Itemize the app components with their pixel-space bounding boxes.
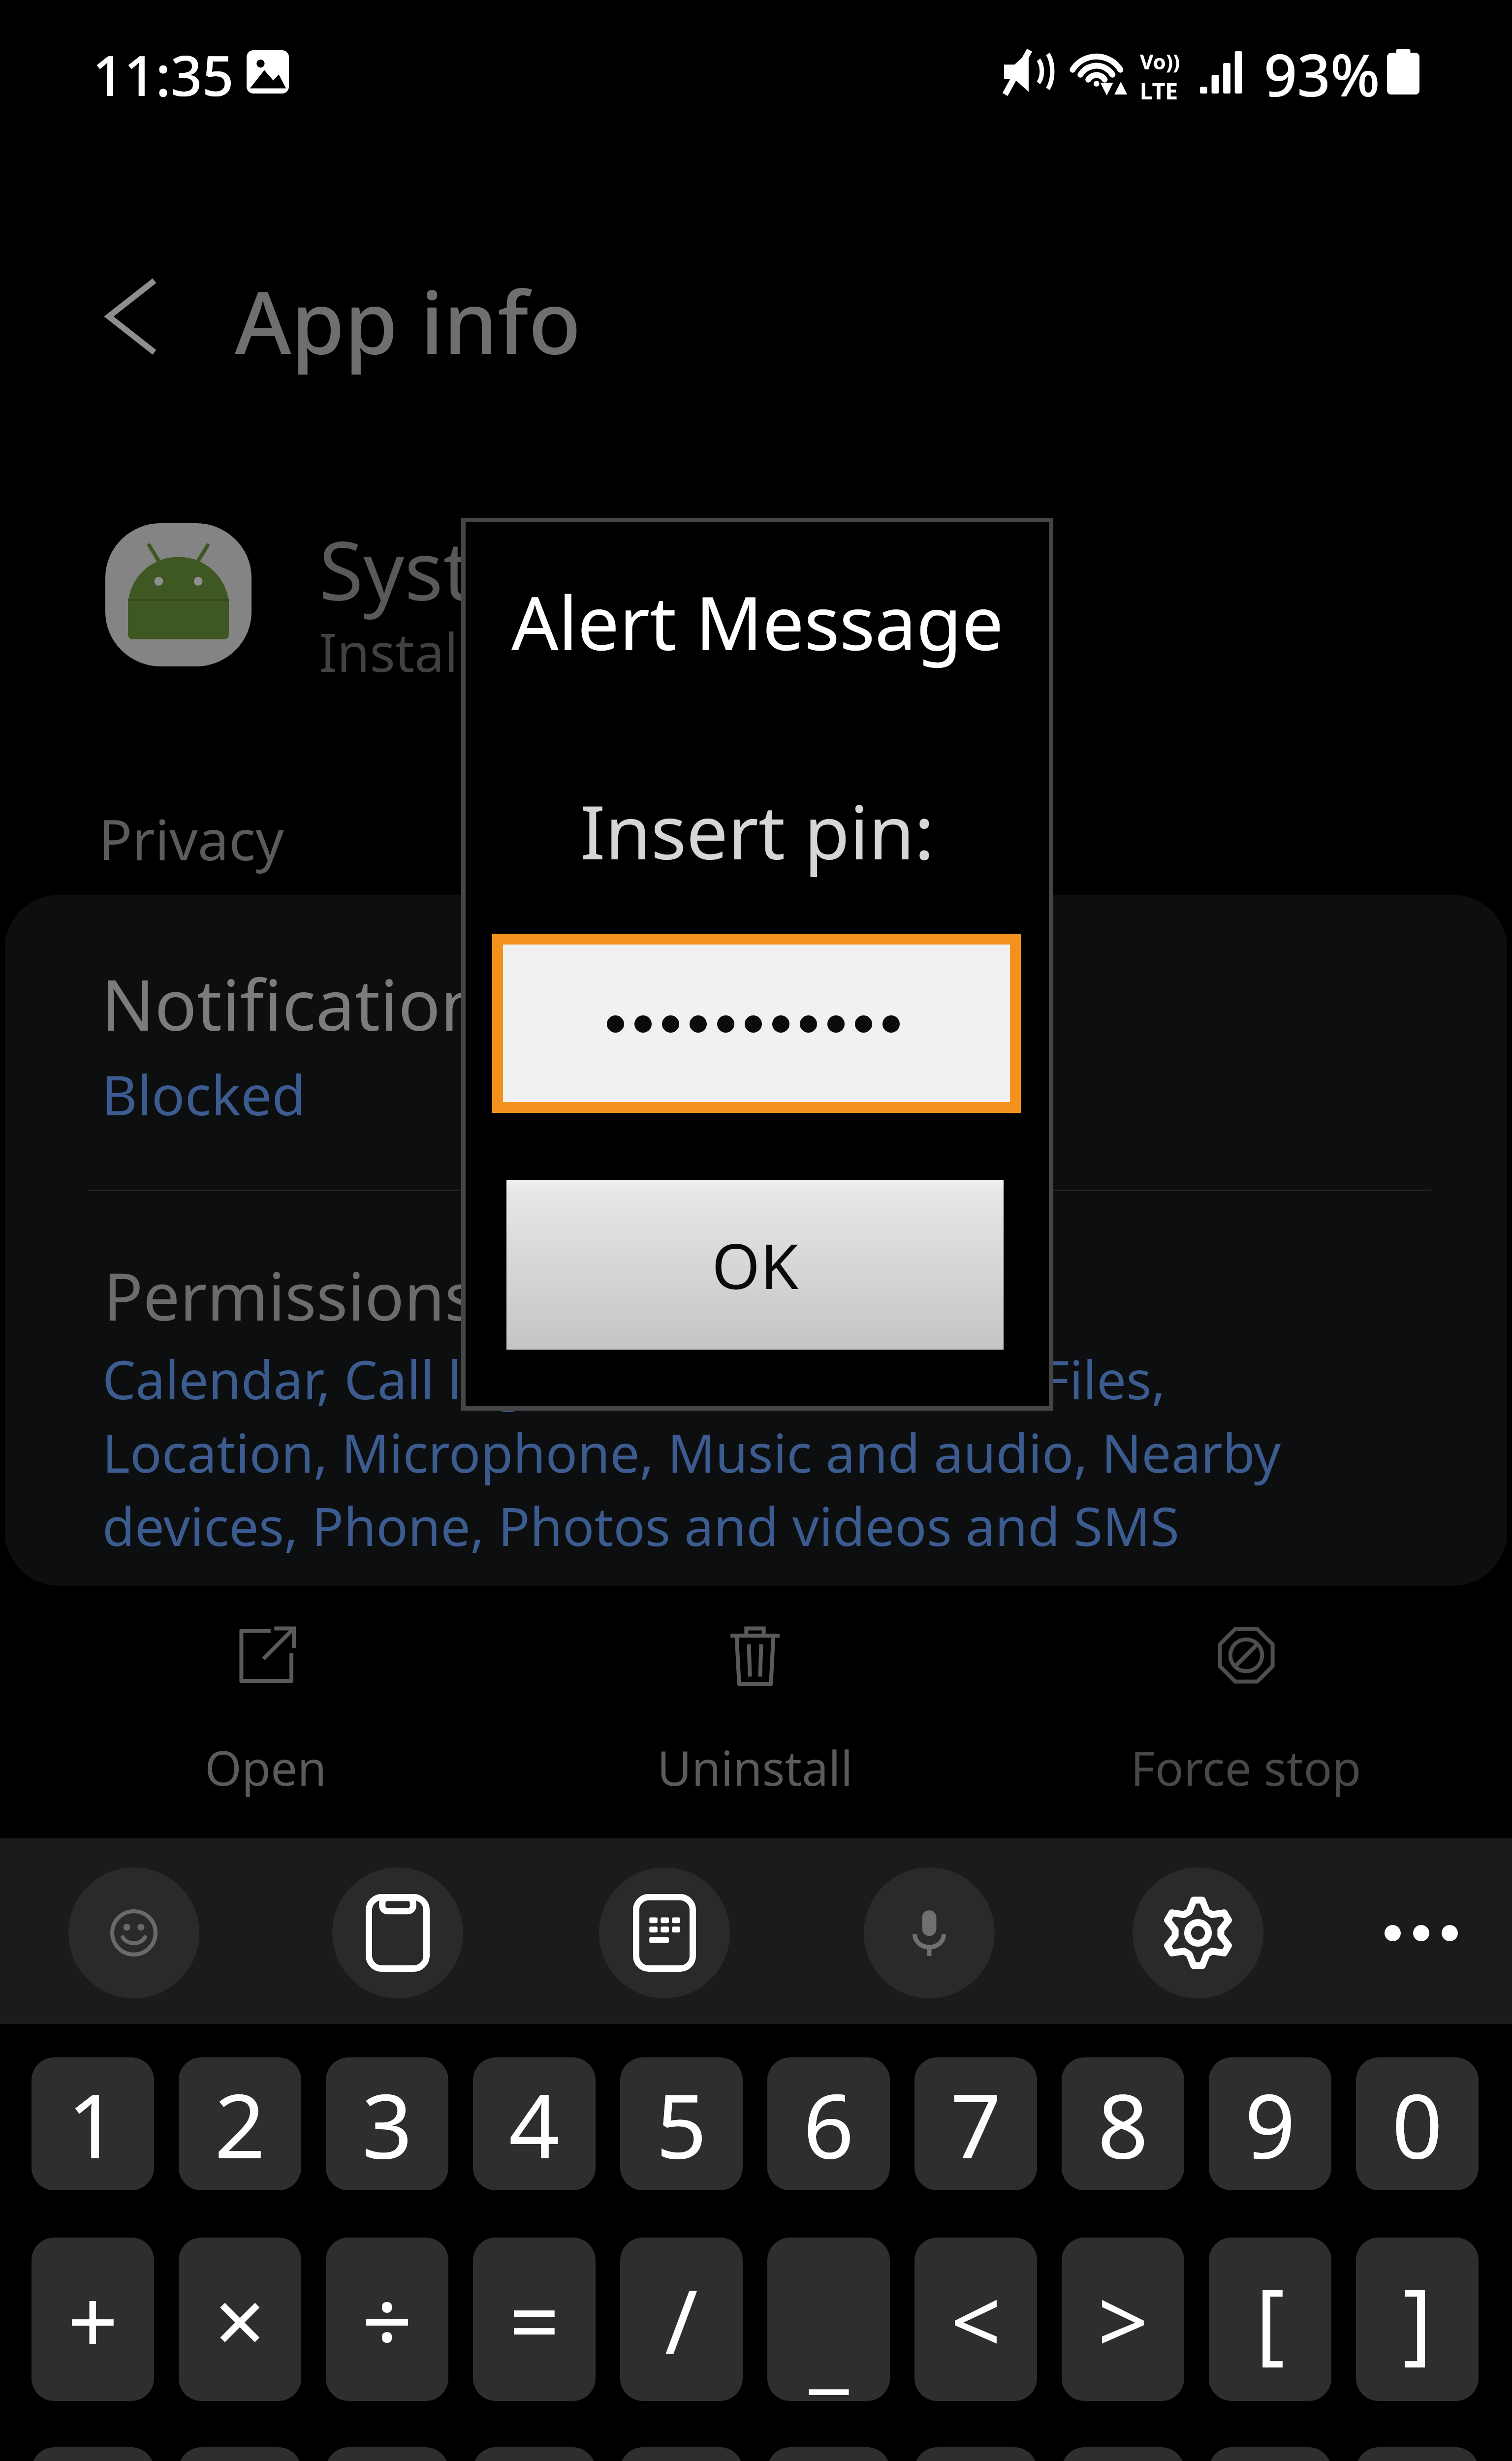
staticText: Permissions	[103, 1251, 476, 1340]
staticText: ÷	[362, 2259, 412, 2380]
staticText: >	[1098, 2259, 1148, 2380]
button[interactable]: key (	[1209, 2447, 1331, 2461]
button[interactable]: Voice input	[864, 1867, 995, 1998]
button[interactable]: key _	[767, 2238, 890, 2401]
button[interactable]: key >	[1062, 2238, 1184, 2401]
staticText: 4	[509, 2064, 560, 2184]
button[interactable]: key +	[31, 2238, 154, 2401]
staticText: [	[1256, 2259, 1285, 2380]
staticText: Open	[205, 1735, 327, 1799]
button[interactable]: key ]	[1356, 2238, 1479, 2401]
button[interactable]: key 8	[1062, 2057, 1184, 2190]
button[interactable]: key 9	[1209, 2057, 1331, 2190]
button[interactable]: key 2	[179, 2057, 301, 2190]
staticText: <	[950, 2259, 1001, 2380]
button[interactable]: key @	[179, 2447, 301, 2461]
staticText: ×	[215, 2259, 265, 2380]
button[interactable]: key [	[1209, 2238, 1331, 2401]
button[interactable]: key )	[1356, 2447, 1479, 2461]
staticText: 6	[803, 2064, 854, 2184]
staticText: Vo))	[1140, 47, 1180, 75]
staticText: Insert pin:	[580, 781, 934, 881]
staticText: Blocked	[101, 1056, 306, 1132]
button[interactable]: key &	[914, 2447, 1037, 2461]
staticText: 1	[67, 2064, 118, 2184]
button[interactable]: key #	[326, 2447, 448, 2461]
staticText: Privacy	[98, 801, 284, 877]
staticText: =	[509, 2259, 560, 2380]
staticText: App info	[235, 262, 581, 379]
staticText: Calendar, Call logs, Camera, Contacts, F…	[102, 1343, 1281, 1561]
button[interactable]: More options	[1352, 1864, 1490, 2002]
button[interactable]: key !	[31, 2447, 154, 2461]
staticText: 8	[1098, 2064, 1148, 2184]
staticText: OK	[712, 1223, 799, 1307]
button[interactable]: key 1	[31, 2057, 154, 2190]
button[interactable]: key ÷	[326, 2238, 448, 2401]
staticText: 93%	[1264, 34, 1380, 114]
button[interactable]: key 6	[767, 2057, 890, 2190]
staticText: 3	[362, 2064, 412, 2184]
staticText: 5	[656, 2064, 707, 2184]
button[interactable]: Open	[128, 1609, 404, 1806]
button[interactable]: key /	[620, 2238, 743, 2401]
button[interactable]: Uninstall	[617, 1609, 893, 1806]
button[interactable]: Back	[74, 252, 187, 380]
button[interactable]	[503, 945, 1010, 1102]
button[interactable]: OK	[506, 1180, 1004, 1350]
staticText: +	[67, 2259, 118, 2380]
staticText: Notifications	[101, 956, 517, 1051]
staticText: 2	[215, 2064, 265, 2184]
button[interactable]: Force stop	[1108, 1609, 1384, 1806]
button[interactable]: key <	[914, 2238, 1037, 2401]
button[interactable]: key 5	[620, 2057, 743, 2190]
staticText: 11:35	[93, 37, 234, 112]
button[interactable]: key 4	[473, 2057, 596, 2190]
staticText: ]	[1403, 2259, 1432, 2380]
staticText: /	[665, 2259, 698, 2380]
button[interactable]: key %	[620, 2447, 743, 2461]
staticText: Alert Message	[511, 571, 1004, 672]
staticText: Installed	[319, 615, 535, 688]
staticText: Uninstall	[657, 1735, 853, 1799]
button[interactable]: Permissions	[5, 1191, 1507, 1585]
staticText: 0	[1392, 2064, 1443, 2184]
button[interactable]: key 7	[914, 2057, 1037, 2190]
button[interactable]: key 3	[326, 2057, 448, 2190]
staticText: 7	[950, 2064, 1001, 2184]
button[interactable]: Notifications	[5, 895, 1507, 1190]
button[interactable]: key ₹	[473, 2447, 596, 2461]
button[interactable]: key =	[473, 2238, 596, 2401]
button[interactable]: key 0	[1356, 2057, 1479, 2190]
button[interactable]: key *	[1062, 2447, 1184, 2461]
button[interactable]: Keyboard settings	[1133, 1867, 1263, 1998]
button[interactable]: Clipboard	[332, 1867, 463, 1998]
staticText: System Settings	[319, 514, 921, 624]
staticText: _	[809, 2287, 849, 2401]
button[interactable]: Keyboard modes	[599, 1867, 730, 1998]
button[interactable]: Emoji	[68, 1867, 199, 1998]
button[interactable]: key ^	[767, 2447, 890, 2461]
staticText: Force stop	[1131, 1735, 1361, 1799]
staticText: LTE	[1140, 75, 1178, 106]
button[interactable]: key ×	[179, 2238, 301, 2401]
staticText: 9	[1245, 2064, 1295, 2184]
